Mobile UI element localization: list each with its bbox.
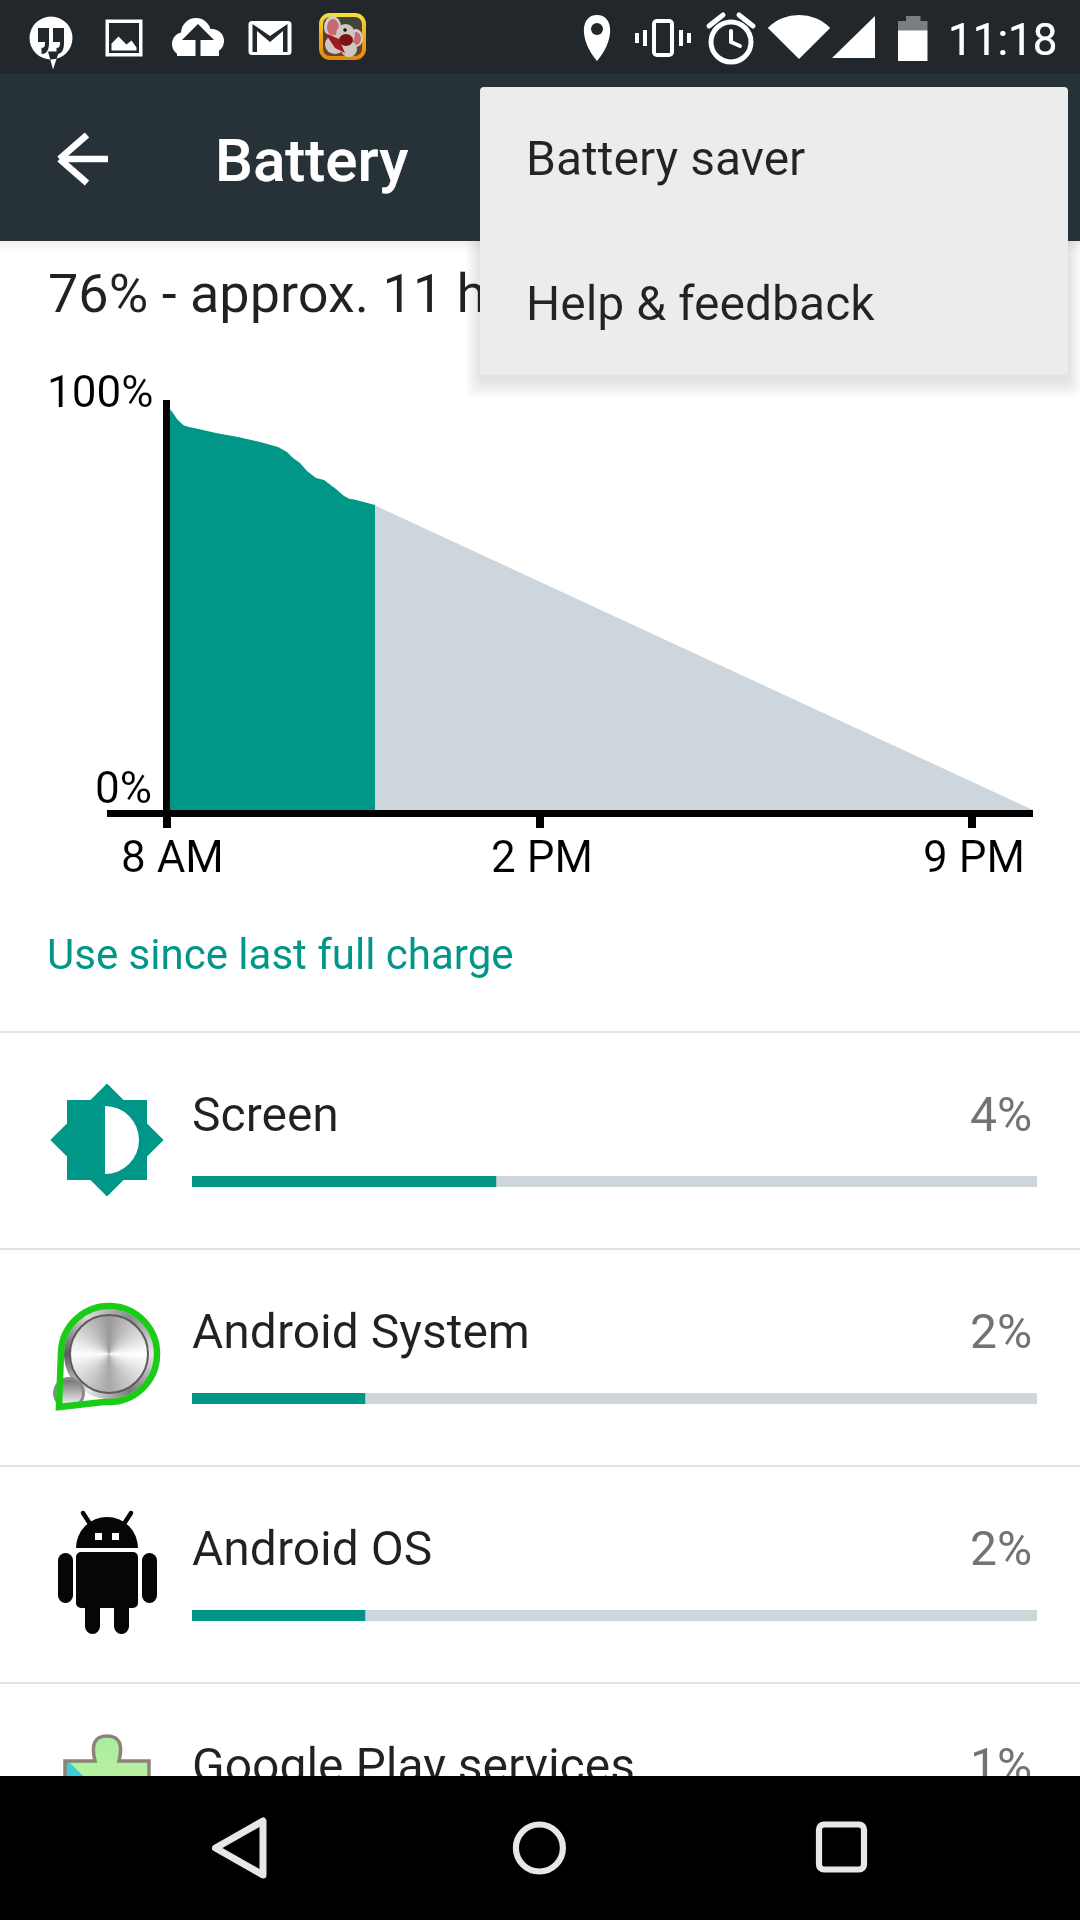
staticText: 1%	[970, 1737, 1033, 1793]
staticText: Android OS	[192, 1520, 433, 1576]
staticText: 76% - approx. 11 h 16 m left	[48, 262, 713, 325]
staticText: Battery saver	[526, 130, 806, 186]
button[interactable]: Help & feedback	[480, 231, 1068, 375]
button[interactable]: Screen	[0, 1033, 1080, 1248]
button[interactable]: Navigate up	[28, 102, 140, 214]
staticText: 2%	[970, 1303, 1033, 1359]
staticText: 4%	[970, 1086, 1033, 1142]
button[interactable]: Google Play services	[0, 1684, 1080, 1899]
staticText: Help & feedback	[526, 275, 875, 331]
button[interactable]: Back	[190, 1798, 290, 1898]
staticText: 2%	[970, 1520, 1033, 1576]
button[interactable]: Battery saver	[480, 87, 1068, 231]
staticText: 0%	[95, 762, 152, 814]
button[interactable]: Android System	[0, 1250, 1080, 1465]
staticText: 8 AM	[121, 831, 224, 883]
staticText: Use since last full charge	[47, 930, 514, 979]
staticText: 9 PM	[923, 831, 1025, 883]
staticText: Battery	[215, 125, 409, 195]
staticText: Google Play services	[192, 1737, 635, 1793]
staticText: 2 PM	[491, 831, 593, 883]
staticText: 100%	[47, 366, 154, 418]
staticText: 11:18	[948, 14, 1058, 66]
staticText: Screen	[192, 1086, 339, 1142]
button[interactable]: Home	[489, 1798, 589, 1898]
staticText: Android System	[192, 1303, 530, 1359]
button[interactable]: Recent apps	[790, 1798, 890, 1898]
button[interactable]: Android OS	[0, 1467, 1080, 1682]
